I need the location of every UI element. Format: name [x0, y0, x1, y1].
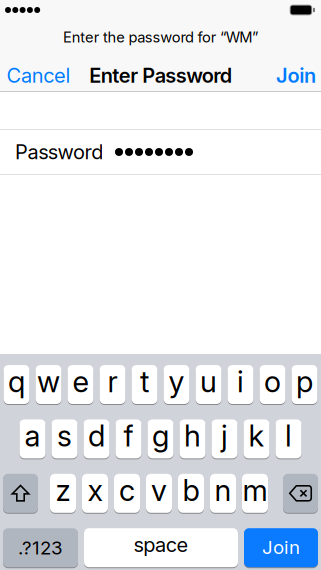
button[interactable]: l [275, 419, 301, 459]
button[interactable]: e [67, 364, 93, 404]
staticText: s [57, 419, 72, 453]
staticText: j [221, 419, 228, 453]
staticText: Join [262, 536, 300, 558]
staticText: r [107, 364, 117, 399]
staticText: Join [276, 64, 316, 87]
button[interactable]: b [178, 473, 204, 513]
staticText: n [214, 473, 231, 508]
button[interactable]: Join [244, 528, 318, 568]
button[interactable]: x [82, 473, 108, 513]
staticText: t [140, 364, 149, 399]
staticText: Enter Password [89, 64, 232, 87]
staticText: f [123, 419, 133, 453]
staticText: l [285, 419, 292, 453]
button[interactable]: o [259, 364, 285, 404]
button[interactable]: n [210, 473, 236, 513]
staticText: space [134, 533, 188, 556]
staticText: q [8, 364, 25, 399]
button[interactable]: m [242, 473, 268, 513]
button[interactable]: q [3, 364, 29, 404]
staticText: g [152, 419, 169, 453]
button[interactable]: y [163, 364, 189, 404]
button[interactable]: Delete [283, 473, 318, 513]
button[interactable]: t [131, 364, 157, 404]
staticText: v [151, 473, 167, 508]
staticText: w [37, 364, 60, 399]
staticText: m [242, 473, 267, 508]
staticText: p [296, 364, 313, 399]
button[interactable]: j [211, 419, 237, 459]
button[interactable]: Shift [3, 473, 38, 513]
staticText: x [87, 473, 102, 508]
button[interactable]: .?123 [3, 528, 78, 568]
button[interactable]: f [115, 419, 141, 459]
staticText: h [184, 419, 201, 453]
staticText: y [168, 364, 184, 399]
staticText: a [24, 419, 40, 453]
staticText: k [248, 419, 264, 453]
button[interactable]: Join [276, 64, 316, 87]
button[interactable]: g [147, 419, 173, 459]
button[interactable]: u [195, 364, 221, 404]
button[interactable]: v [146, 473, 172, 513]
button[interactable]: w [35, 364, 61, 404]
button[interactable]: h [179, 419, 205, 459]
button[interactable]: a [19, 419, 45, 459]
staticText: u [200, 364, 217, 399]
staticText: .?123 [18, 537, 63, 559]
button[interactable]: d [83, 419, 109, 459]
button[interactable]: z [50, 473, 76, 513]
button[interactable]: i [227, 364, 253, 404]
staticText: b [182, 473, 199, 508]
button[interactable]: space [84, 528, 238, 568]
button[interactable]: s [51, 419, 77, 459]
staticText: Cancel [6, 64, 70, 87]
button[interactable]: k [243, 419, 269, 459]
staticText: e [72, 364, 88, 399]
staticText: Password [15, 140, 103, 164]
staticText: z [55, 473, 70, 508]
button[interactable]: Cancel [6, 64, 70, 87]
button[interactable]: p [291, 364, 317, 404]
staticText: o [264, 364, 281, 399]
button[interactable]: c [114, 473, 140, 513]
button[interactable]: r [99, 364, 125, 404]
staticText: c [119, 473, 135, 508]
staticText: d [88, 419, 105, 453]
staticText: Enter the password for “WM” [63, 28, 258, 46]
staticText: i [237, 364, 244, 399]
button[interactable]: Password [0, 130, 321, 174]
